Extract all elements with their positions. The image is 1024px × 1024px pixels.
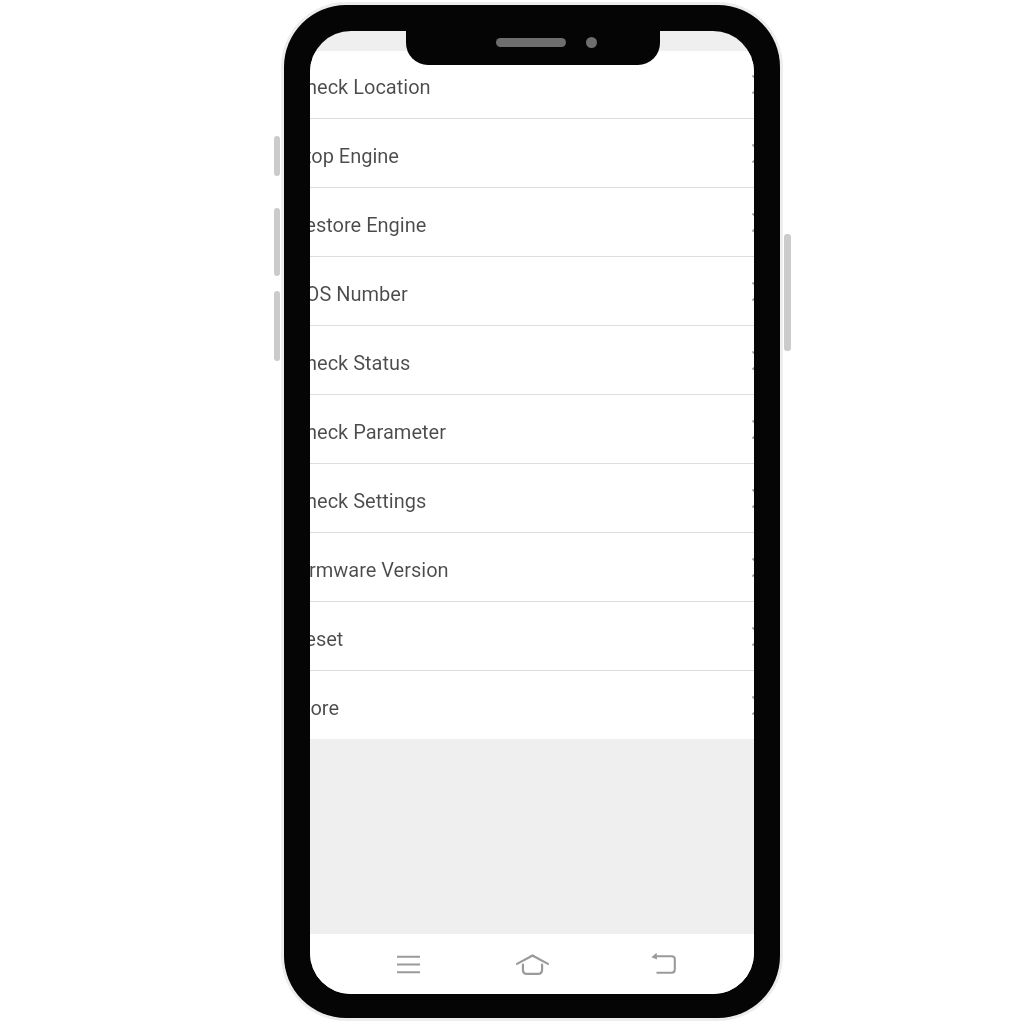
button[interactable]: Recent apps — [370, 934, 446, 994]
button[interactable]: Firmware Version — [310, 533, 754, 601]
button[interactable]: Check Settings — [310, 464, 754, 532]
button[interactable]: Stop Engine — [310, 119, 754, 187]
button[interactable]: POS Number — [310, 257, 754, 325]
staticText: Stop Engine — [310, 144, 399, 167]
button[interactable]: Check Location — [310, 51, 754, 118]
staticText: Check Parameter — [310, 420, 446, 443]
staticText: More — [310, 696, 340, 719]
staticText: Check Status — [310, 351, 411, 374]
button[interactable]: More — [310, 671, 754, 739]
staticText: Check Settings — [310, 489, 427, 512]
button[interactable]: Check Parameter — [310, 395, 754, 463]
staticText: Restore Engine — [310, 213, 427, 236]
staticText: Reset — [310, 627, 344, 650]
button[interactable]: Reset — [310, 602, 754, 670]
staticText: POS Number — [310, 282, 408, 305]
button[interactable]: Back — [626, 934, 702, 994]
button[interactable]: Restore Engine — [310, 188, 754, 256]
button[interactable]: Home — [494, 934, 570, 994]
staticText: Check Location — [310, 75, 431, 98]
staticText: Firmware Version — [310, 558, 449, 581]
button[interactable]: Check Status — [310, 326, 754, 394]
